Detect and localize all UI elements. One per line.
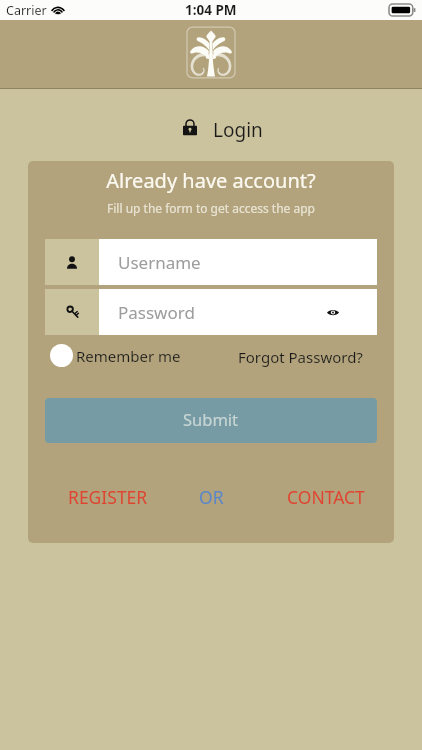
staticText: Fill up the form to get access the app — [28, 200, 394, 216]
staticText: Password — [118, 301, 195, 324]
staticText: Submit — [183, 408, 239, 430]
button[interactable]: Remember me — [50, 344, 181, 367]
button[interactable]: CONTACT — [287, 485, 365, 509]
button[interactable]: REGISTER — [68, 485, 148, 509]
staticText: Already have account? — [28, 167, 394, 194]
staticText: Username — [118, 251, 201, 274]
staticText: 1:04 PM — [185, 1, 237, 19]
button[interactable]: Forgot Password? — [238, 347, 363, 367]
other: Wi-Fi — [51, 5, 65, 15]
staticText: Carrier — [6, 2, 47, 19]
button[interactable]: Submit — [45, 398, 377, 443]
other: Show password — [327, 309, 339, 316]
staticText: Login — [213, 117, 263, 143]
button[interactable]: Password — [45, 289, 377, 335]
button[interactable]: Username — [45, 239, 377, 285]
other: Login — [183, 119, 197, 136]
staticText: Remember me — [76, 346, 181, 366]
button[interactable]: OR — [199, 485, 224, 509]
